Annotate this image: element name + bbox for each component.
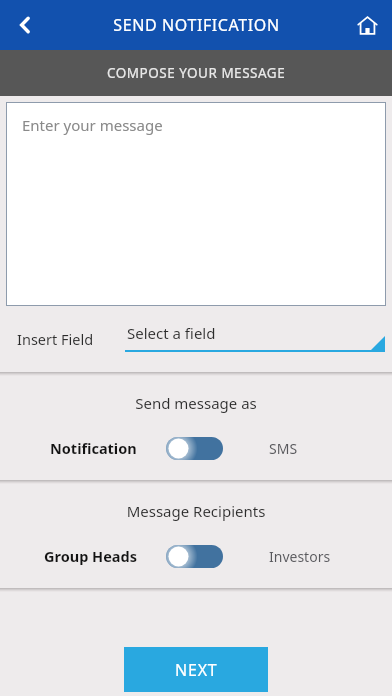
staticText: Enter your message xyxy=(22,115,163,135)
staticText: COMPOSE YOUR MESSAGE xyxy=(107,64,286,82)
button[interactable]: Back xyxy=(0,0,50,50)
button[interactable]: Toggle Notification or SMS xyxy=(166,437,223,460)
staticText: Notification xyxy=(50,438,137,458)
button[interactable]: Enter your message xyxy=(6,102,386,306)
button[interactable]: Toggle Group Heads or Investors xyxy=(166,545,223,568)
staticText: Send message as xyxy=(0,393,392,413)
staticText: Message Recipients xyxy=(0,501,392,521)
staticText: Select a field xyxy=(127,323,216,343)
staticText: SEND NOTIFICATION xyxy=(113,14,280,36)
staticText: Insert Field xyxy=(17,329,94,349)
staticText: SMS xyxy=(269,439,298,458)
button[interactable]: Home xyxy=(342,0,392,50)
button[interactable]: Select a field xyxy=(125,319,385,359)
staticText: Group Heads xyxy=(44,546,137,566)
staticText: Investors xyxy=(269,547,331,566)
button[interactable]: NEXT xyxy=(124,647,268,692)
staticText: NEXT xyxy=(175,659,218,681)
